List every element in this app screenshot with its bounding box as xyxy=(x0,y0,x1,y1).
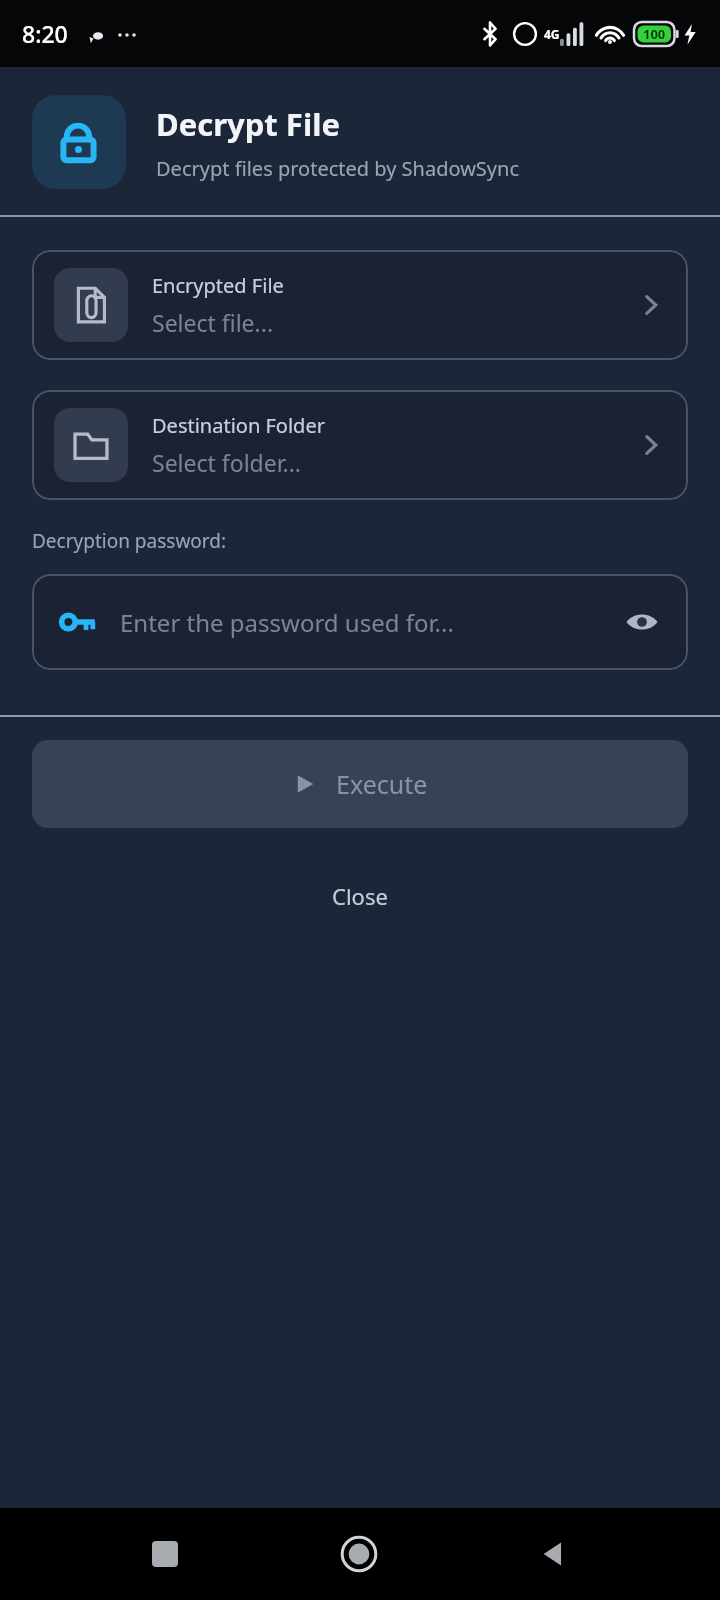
staticText: Select file... xyxy=(152,307,274,338)
staticText: Decrypt File xyxy=(156,103,340,145)
staticText: Decryption password: xyxy=(32,528,227,554)
staticText: Encrypted File xyxy=(152,272,284,299)
button[interactable]: Enter the password used for... xyxy=(32,574,688,670)
staticText: Enter the password used for... xyxy=(120,606,622,639)
staticText: Execute xyxy=(336,767,428,801)
button[interactable]: Destination Folder xyxy=(32,390,688,500)
staticText: Select folder... xyxy=(152,447,302,478)
staticText: 100 xyxy=(643,25,666,43)
staticText: 4G xyxy=(544,26,560,42)
staticText: Destination Folder xyxy=(152,412,325,439)
button[interactable]: Execute xyxy=(32,740,688,828)
staticText: 8:20 xyxy=(22,18,68,49)
staticText: Decrypt files protected by ShadowSync xyxy=(156,155,519,182)
button[interactable]: Encrypted File xyxy=(32,250,688,360)
button[interactable]: Recents xyxy=(136,1525,194,1583)
button[interactable]: Close xyxy=(0,868,720,924)
staticText: Close xyxy=(332,881,388,911)
other: Open xyxy=(636,430,666,460)
other: Open xyxy=(636,290,666,320)
button[interactable]: Show password xyxy=(622,602,662,642)
button[interactable]: Back xyxy=(525,1525,583,1583)
button[interactable]: Home xyxy=(330,1525,388,1583)
